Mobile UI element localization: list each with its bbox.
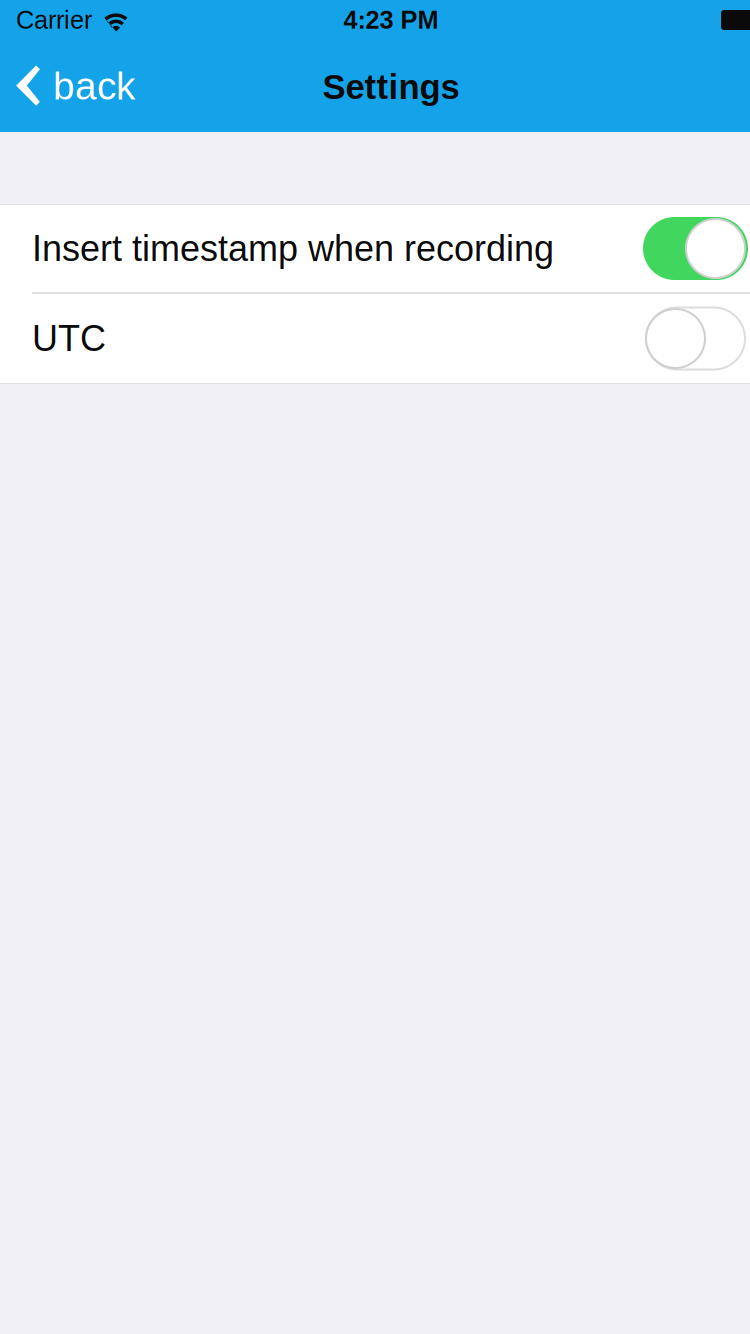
staticText: Carrier: [16, 6, 92, 34]
button[interactable]: UTC: [0, 294, 750, 383]
staticText: UTC: [32, 318, 106, 359]
staticText: Settings: [322, 68, 459, 106]
button[interactable]: Insert timestamp when recording: [0, 205, 750, 292]
staticText: Insert timestamp when recording: [32, 228, 554, 269]
staticText: 4:23 PM: [343, 6, 438, 34]
button[interactable]: back: [0, 42, 157, 130]
staticText: back: [53, 64, 135, 108]
